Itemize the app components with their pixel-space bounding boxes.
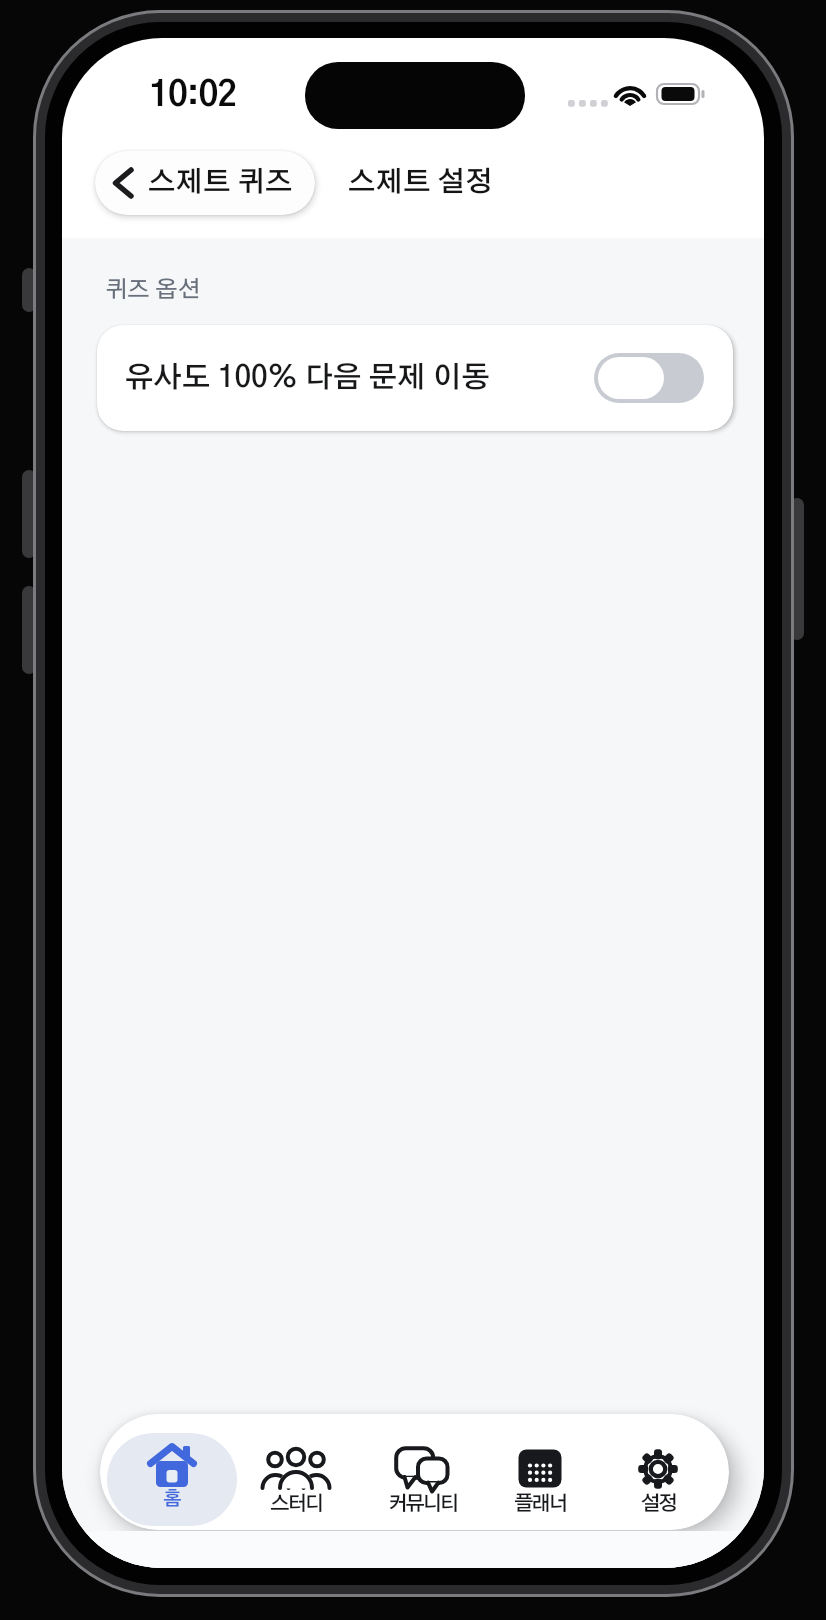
staticText: 홈 [163, 1490, 182, 1509]
staticText: 스제트 퀴즈 [148, 169, 293, 197]
button[interactable]: 스제트 퀴즈 [95, 151, 315, 215]
staticText: 유사도 100% 다음 문제 이동 [125, 364, 594, 393]
button[interactable] [594, 353, 704, 403]
button[interactable]: 유사도 100% 다음 문제 이동 [97, 325, 733, 431]
staticText: 스터디 [270, 1494, 322, 1514]
staticText: 커뮤니티 [388, 1494, 457, 1514]
button[interactable]: 홈 [107, 1414, 237, 1530]
staticText: 퀴즈 옵션 [105, 279, 201, 302]
button[interactable]: 커뮤니티 [361, 1414, 483, 1530]
staticText: 스제트 설정 [348, 169, 493, 197]
button[interactable]: 플래너 [479, 1414, 601, 1530]
button[interactable]: 설정 [597, 1414, 719, 1530]
staticText: 플래너 [514, 1494, 566, 1514]
staticText: 설정 [641, 1494, 676, 1514]
button[interactable]: 스터디 [235, 1414, 357, 1530]
staticText: 10:02 [149, 79, 237, 113]
